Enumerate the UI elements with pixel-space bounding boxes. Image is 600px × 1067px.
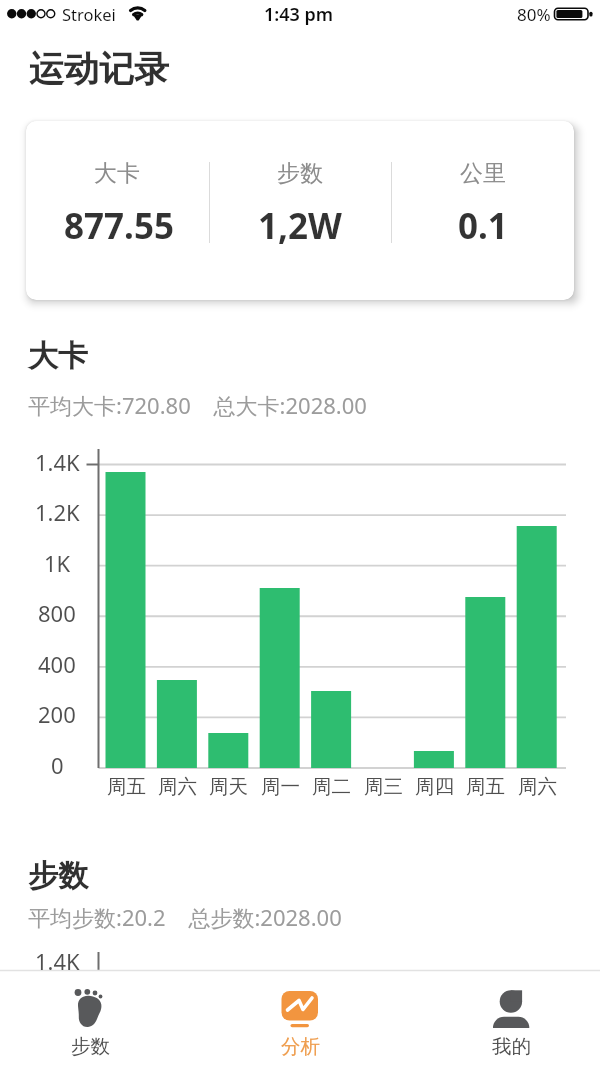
staticText: 200	[38, 699, 76, 729]
staticText: 平均步数:20.2 总步数:2028.00	[28, 902, 342, 932]
staticText: 400	[38, 649, 76, 679]
button[interactable]: 分析	[230, 972, 370, 1067]
staticText: 877.55	[64, 202, 174, 250]
staticText: 0	[51, 750, 64, 780]
staticText: 周六	[158, 774, 197, 799]
staticText: 大卡	[28, 337, 88, 375]
staticText: 公里	[460, 159, 506, 188]
staticText: 800	[38, 598, 76, 628]
button[interactable]	[26, 121, 574, 300]
button[interactable]: 步数	[20, 972, 160, 1067]
staticText: 周六	[518, 774, 557, 799]
staticText: 1,2W	[258, 202, 342, 250]
staticText: 运动记录	[29, 47, 169, 91]
staticText: 周四	[415, 774, 454, 799]
staticText: 周五	[466, 774, 505, 799]
staticText: Strokei	[62, 3, 116, 25]
staticText: 1.4K	[35, 447, 80, 477]
staticText: 80%	[517, 3, 551, 26]
staticText: 1.4K	[35, 946, 80, 976]
staticText: 大卡	[94, 159, 140, 188]
staticText: 1:43 pm	[264, 2, 334, 27]
button[interactable]: 我的	[441, 972, 581, 1067]
staticText: 步数	[71, 1034, 110, 1059]
staticText: 0.1	[458, 202, 508, 250]
staticText: 1.2K	[35, 497, 80, 527]
staticText: 分析	[281, 1034, 320, 1059]
staticText: 周一	[261, 774, 300, 799]
staticText: 周五	[107, 774, 146, 799]
staticText: 步数	[277, 159, 323, 188]
staticText: 步数	[28, 857, 88, 895]
staticText: 1K	[44, 548, 71, 578]
staticText: 我的	[492, 1034, 531, 1059]
staticText: 周天	[209, 774, 248, 799]
staticText: 周三	[364, 774, 403, 799]
staticText: 周二	[312, 774, 351, 799]
staticText: 平均大卡:720.80 总大卡:2028.00	[28, 390, 367, 420]
